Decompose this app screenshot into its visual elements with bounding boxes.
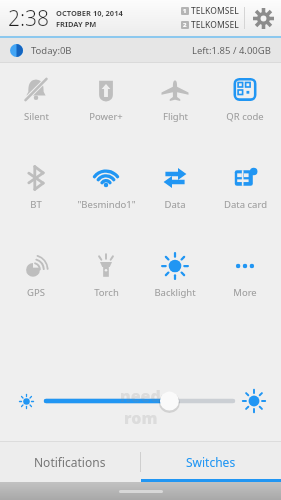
button[interactable]: Power+ (73, 73, 139, 125)
staticText: need (120, 385, 161, 407)
staticText: BT (30, 198, 42, 211)
staticText: Torch (94, 286, 119, 299)
staticText: Flight (163, 110, 188, 123)
button[interactable]: Data (142, 161, 208, 213)
button[interactable]: Maximum brightness (239, 386, 269, 416)
staticText: TELKOMSEL (191, 19, 239, 31)
staticText: Silent (24, 110, 49, 123)
staticText: OCTOBER 10, 2014 (56, 8, 123, 18)
button[interactable]: BT (3, 161, 69, 213)
button[interactable]: More (212, 249, 278, 301)
button[interactable]: Brightness (46, 386, 233, 416)
staticText: 2:38 (8, 4, 50, 33)
staticText: Power+ (89, 110, 123, 123)
staticText: GPS (27, 286, 45, 299)
button[interactable]: Data card (212, 161, 278, 213)
button[interactable]: Switches (141, 442, 281, 482)
staticText: Notifications (34, 454, 106, 470)
button[interactable]: Backlight (142, 249, 208, 301)
staticText: Data (164, 198, 186, 211)
staticText: Data card (224, 198, 267, 211)
button[interactable]: Minimum brightness (12, 387, 40, 415)
button[interactable]: Today:0B (0, 38, 281, 62)
staticText: QR code (226, 110, 264, 123)
staticText: 1 (183, 7, 187, 15)
staticText: TELKOMSEL (191, 5, 239, 17)
staticText: Today:0B (31, 44, 72, 57)
staticText: "Besmindo1" (77, 198, 136, 211)
button[interactable]: GPS (3, 249, 69, 301)
staticText: rom (124, 407, 158, 429)
button[interactable]: "Besmindo1" (73, 161, 139, 213)
staticText: Backlight (154, 286, 196, 299)
button[interactable]: Torch (73, 249, 139, 301)
button[interactable]: Flight (142, 73, 208, 125)
staticText: More (233, 286, 257, 299)
staticText: 2 (183, 21, 187, 29)
button[interactable]: Notifications (0, 442, 140, 482)
staticText: Left:1.85 / 4.00GB (192, 44, 271, 57)
button[interactable]: Settings (250, 5, 276, 31)
button[interactable]: QR code (212, 73, 278, 125)
staticText: Switches (186, 454, 236, 470)
staticText: FRIDAY PM (56, 19, 97, 29)
button[interactable]: Silent (3, 73, 69, 125)
